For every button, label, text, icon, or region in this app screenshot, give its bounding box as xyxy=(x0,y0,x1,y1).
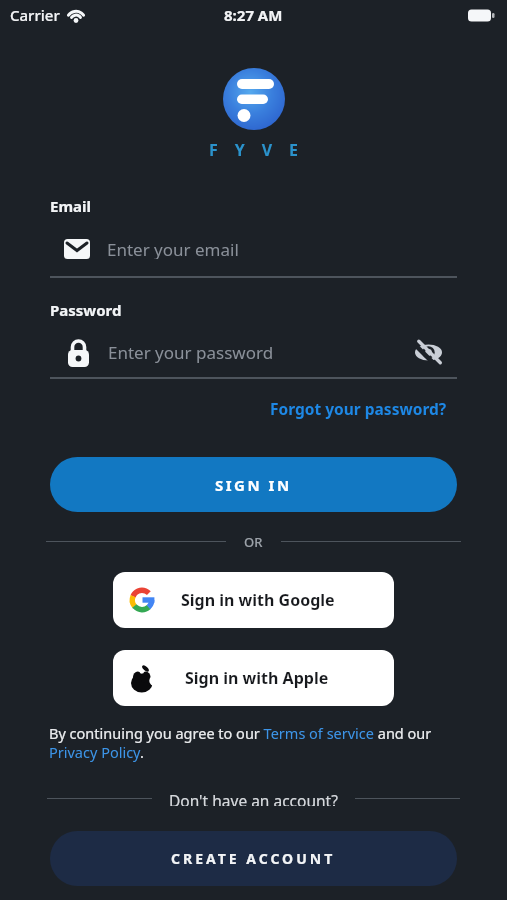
button[interactable]: CREATE ACCOUNT xyxy=(50,831,457,886)
staticText: Sign in with Google xyxy=(181,589,335,611)
staticText: OR xyxy=(244,533,263,549)
button[interactable]: Forgot your password? xyxy=(270,398,447,419)
staticText: Carrier xyxy=(10,5,60,25)
staticText: Email xyxy=(50,196,91,216)
staticText: Enter your password xyxy=(108,341,274,364)
staticText: Password xyxy=(50,300,122,320)
staticText: 8:27 AM xyxy=(224,5,283,25)
staticText: Don't have an account? xyxy=(169,790,338,806)
button[interactable]: Sign in with Apple xyxy=(113,650,394,706)
button[interactable]: Sign in with Google xyxy=(113,572,394,628)
staticText: FYVE xyxy=(17,139,507,161)
staticText: Enter your email xyxy=(107,238,239,259)
button[interactable]: By continuing you agree to our Terms of … xyxy=(49,723,467,763)
staticText: SIGN IN xyxy=(215,475,292,495)
staticText: Sign in with Apple xyxy=(185,667,329,689)
staticText: CREATE ACCOUNT xyxy=(171,849,336,868)
button[interactable]: SIGN IN xyxy=(50,457,457,512)
button[interactable] xyxy=(415,340,443,365)
